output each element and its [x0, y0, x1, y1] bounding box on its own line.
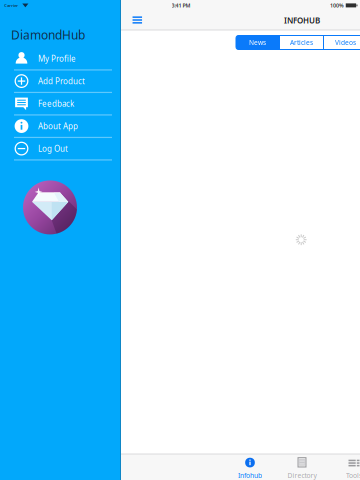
button[interactable]: Articles: [280, 35, 323, 49]
button[interactable]: Tools: [328, 456, 360, 480]
staticText: Feedback: [38, 98, 74, 109]
staticText: 100%: [330, 2, 344, 9]
button[interactable]: My Profile: [14, 48, 123, 70]
button[interactable]: Feedback: [14, 93, 123, 115]
staticText: Carrier: [4, 3, 18, 8]
button[interactable]: Add Product: [14, 70, 123, 93]
button[interactable]: About App: [14, 115, 123, 138]
staticText: Tools: [346, 471, 360, 480]
button[interactable]: News: [236, 35, 279, 49]
staticText: Directory: [287, 471, 316, 480]
staticText: 3:41 PM: [171, 2, 190, 9]
staticText: About App: [38, 121, 78, 131]
staticText: DiamondHub: [11, 27, 85, 43]
button[interactable]: Menu: [124, 10, 150, 29]
staticText: INFOHUB: [284, 15, 320, 26]
staticText: Infohub: [238, 471, 262, 480]
staticText: Log Out: [38, 143, 68, 154]
staticText: Videos: [335, 38, 356, 47]
staticText: Articles: [290, 38, 313, 47]
button[interactable]: Log Out: [14, 138, 123, 160]
button[interactable]: Videos: [324, 35, 360, 49]
staticText: Add Product: [38, 76, 85, 86]
button[interactable]: Directory: [276, 456, 328, 480]
button[interactable]: Infohub: [224, 456, 276, 480]
staticText: My Profile: [38, 53, 76, 64]
staticText: News: [249, 38, 266, 47]
